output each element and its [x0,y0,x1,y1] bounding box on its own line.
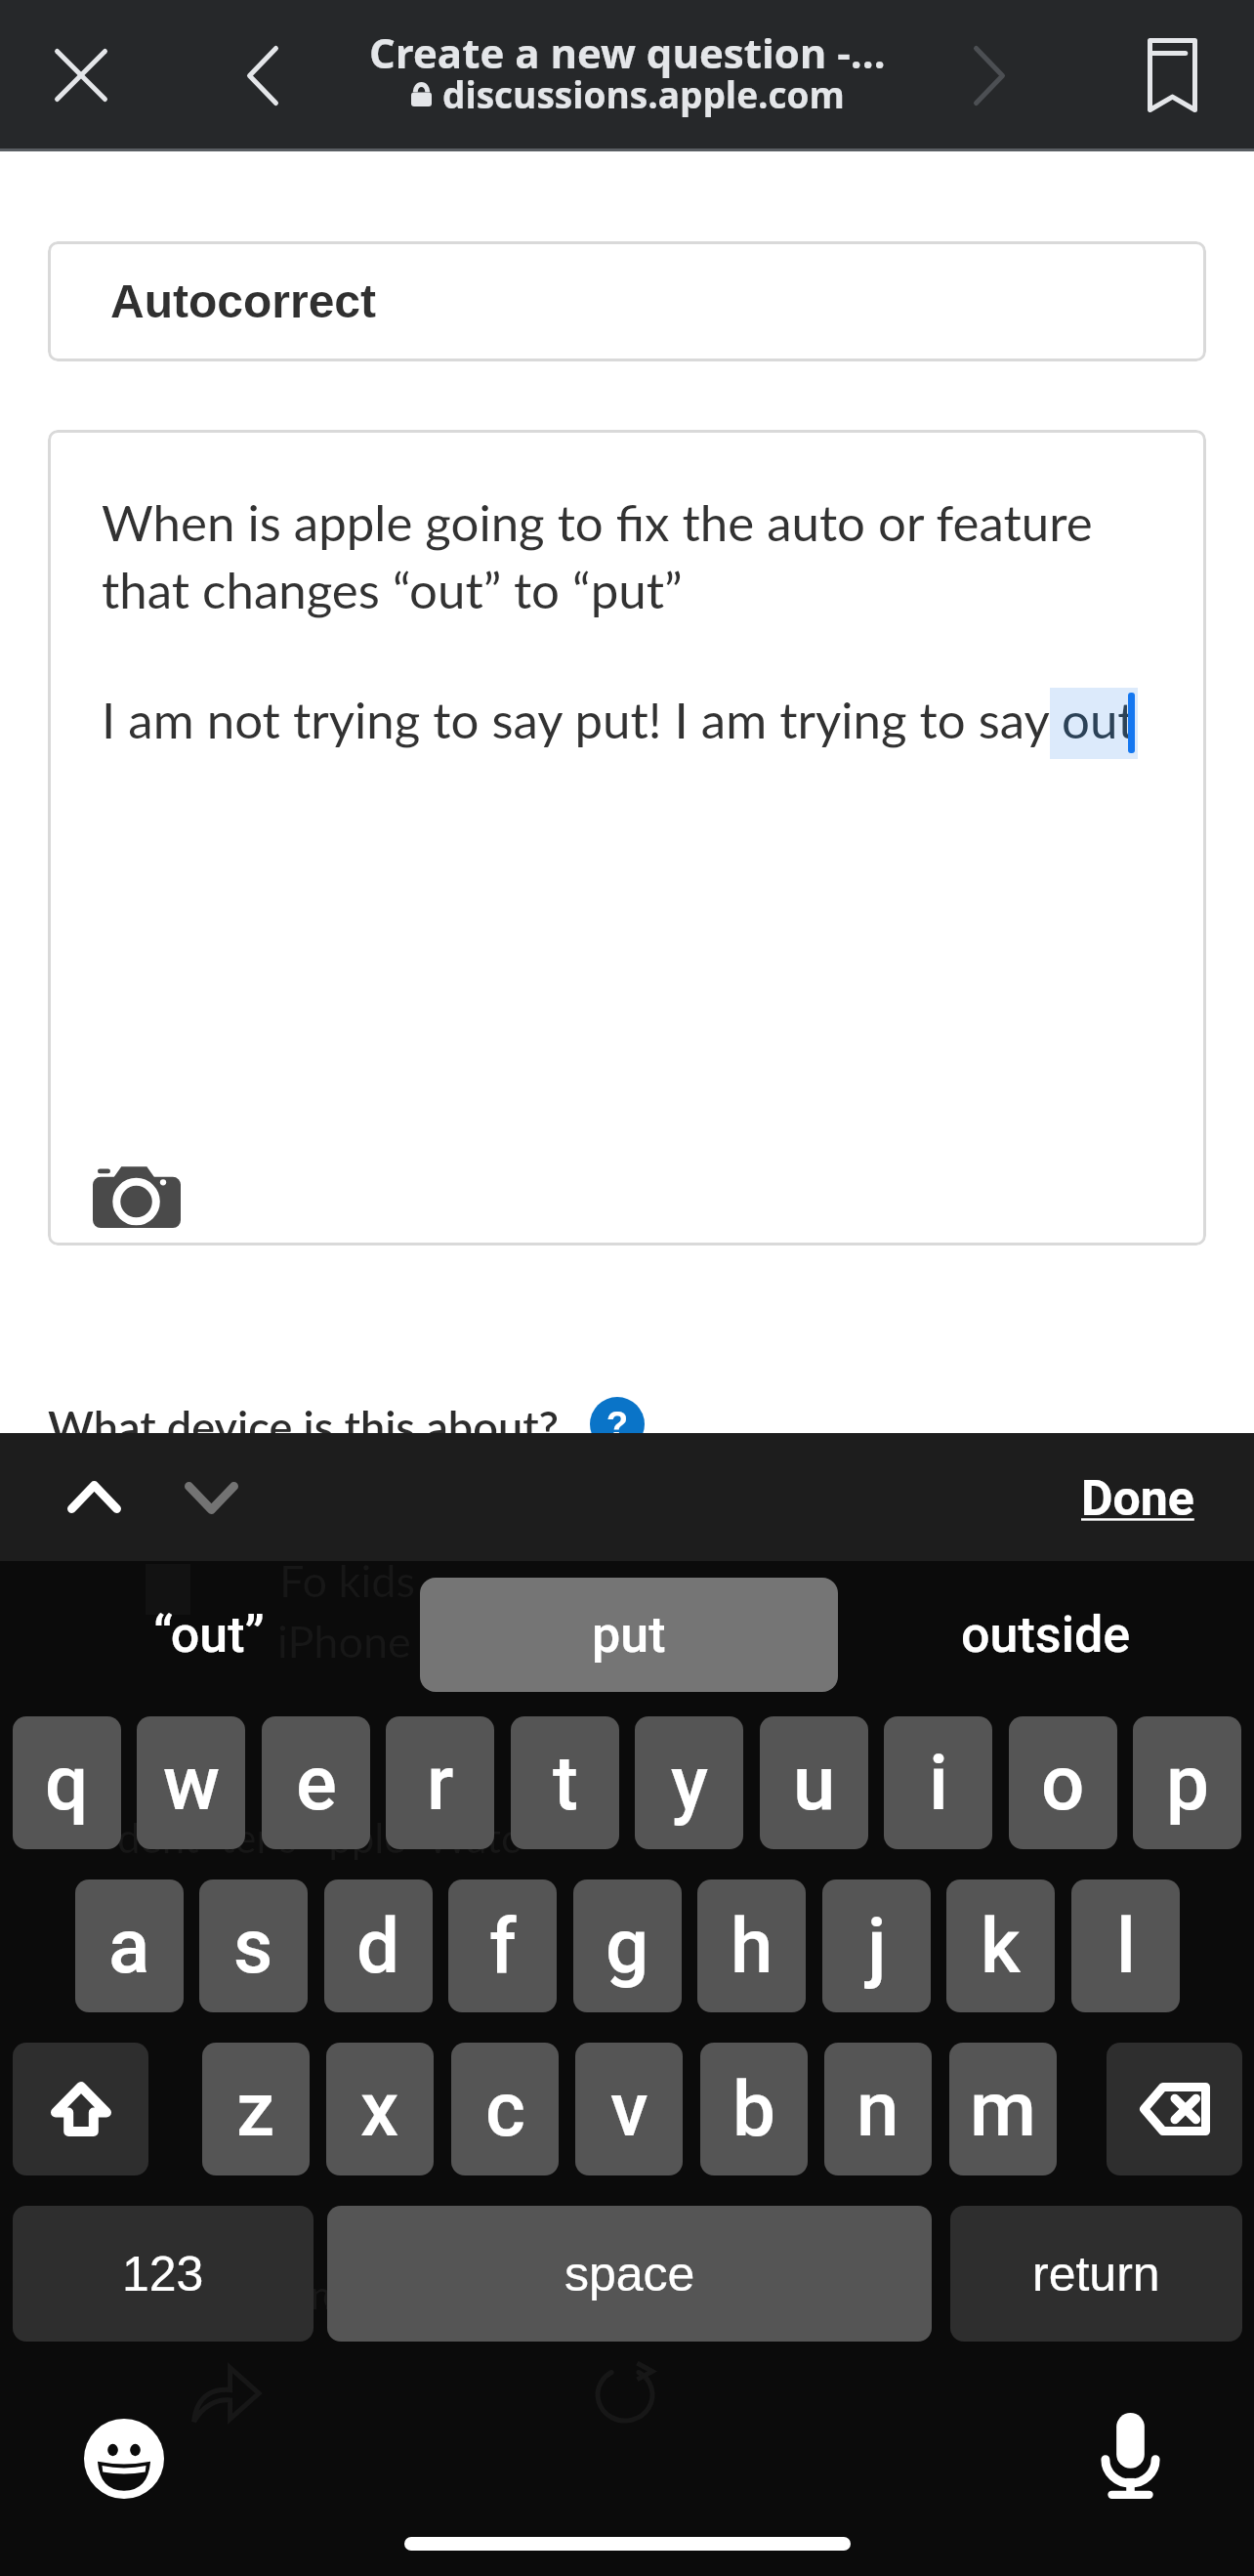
staticText: s [233,1902,273,1991]
staticText: a [108,1902,150,1991]
staticText: j [867,1902,887,1991]
button[interactable]: Emoji keyboard [75,2409,173,2508]
staticText: that changes “out” to “put” [102,560,683,619]
staticText: t [553,1739,578,1828]
staticText: Fo kids [279,1554,415,1607]
button[interactable]: c [451,2043,559,2175]
button[interactable]: v [575,2043,683,2175]
button[interactable]: d [324,1879,433,2012]
staticText: v [610,2065,648,2154]
staticText: l [1116,1902,1136,1991]
button[interactable]: Add photo [78,1148,195,1246]
button[interactable]: Back [204,12,321,139]
staticText: 123 [122,2247,204,2302]
staticText: Create a new question -… [369,24,886,80]
button[interactable]: Autocorrect [48,241,1206,361]
button[interactable]: Help [590,1397,645,1452]
staticText: q [45,1739,89,1828]
button[interactable]: h [697,1879,806,2012]
staticText: u [793,1739,836,1828]
button[interactable]: space [327,2206,932,2342]
button[interactable]: Forward [931,12,1048,139]
staticText: iPhone [277,1615,411,1668]
button[interactable]: f [448,1879,557,2012]
button[interactable]: Next field [147,1433,275,1561]
staticText: k [981,1902,1021,1991]
staticText: p [1166,1739,1209,1828]
staticText: return [1032,2247,1160,2302]
staticText: outside [961,1605,1131,1665]
staticText: c [485,2065,525,2154]
staticText: dent ter’s pple Watc [117,1813,522,1862]
staticText: out [1062,690,1136,749]
button[interactable]: u [760,1716,868,1849]
button[interactable]: a [75,1879,184,2012]
staticText: w [163,1739,220,1828]
staticText: Done [1081,1470,1194,1528]
button[interactable]: i [884,1716,992,1849]
button[interactable]: Dictate [1081,2413,1180,2499]
button[interactable]: e [262,1716,370,1849]
button[interactable]: o [1009,1716,1117,1849]
staticText: n [857,2065,899,2154]
button[interactable]: t [511,1716,619,1849]
button[interactable]: Shift [13,2043,148,2175]
button[interactable]: k [946,1879,1055,2012]
staticText: g [606,1902,649,1991]
button[interactable]: Bookmark [1108,12,1235,139]
staticText: b [732,2065,775,2154]
button[interactable]: z [202,2043,310,2175]
button[interactable]: “out” [0,1578,418,1692]
button[interactable]: r [386,1716,494,1849]
staticText: z [236,2065,275,2154]
button[interactable]: y [635,1716,743,1849]
staticText: f [489,1902,517,1991]
button[interactable]: Backspace [1107,2043,1242,2175]
button[interactable]: put [420,1578,838,1692]
staticText: h [731,1902,773,1991]
staticText: I am not trying to say put! I am trying … [102,690,1062,749]
button[interactable]: return [950,2206,1242,2342]
button[interactable]: Done [1081,1470,1194,1528]
staticText: o [1041,1739,1085,1828]
button[interactable]: When is apple going to fix the auto or f… [48,430,1206,1246]
button[interactable]: j [822,1879,931,2012]
button[interactable]: s [199,1879,308,2012]
button[interactable]: n [824,2043,932,2175]
staticText: y [671,1739,708,1828]
staticText: What device is this about? [48,1400,560,1453]
staticText: r [427,1739,454,1828]
staticText: put [592,1605,666,1665]
staticText: e [296,1739,337,1828]
staticText: When is apple going to fix the auto or f… [102,492,1093,552]
button[interactable]: Previous field [30,1433,158,1561]
button[interactable]: m [949,2043,1057,2175]
staticText: Autocorrect [110,275,377,328]
staticText: d [356,1902,400,1991]
button[interactable]: Close [18,12,145,139]
button[interactable]: p [1133,1716,1241,1849]
staticText: i [929,1739,948,1828]
staticText: m [970,2065,1036,2154]
button[interactable]: b [700,2043,808,2175]
staticText: elect your device [322,2271,612,2318]
staticText: “out” [153,1605,265,1665]
staticText: Choose an option [29,2271,332,2318]
button[interactable]: g [573,1879,682,2012]
staticText: x [360,2065,399,2154]
staticText: ? [606,1405,628,1444]
staticText: space [564,2247,695,2302]
button[interactable]: outside [838,1578,1254,1692]
button[interactable]: 123 [13,2206,313,2342]
button[interactable]: q [13,1716,121,1849]
button[interactable]: x [326,2043,434,2175]
staticText: discussions.apple.com [442,69,845,118]
button[interactable]: l [1071,1879,1180,2012]
button[interactable]: w [137,1716,245,1849]
